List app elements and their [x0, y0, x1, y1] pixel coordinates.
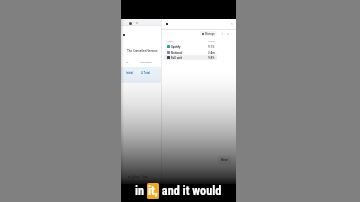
- staticText: Next: [221, 158, 228, 162]
- button[interactable]: Full unit: [167, 55, 215, 60]
- staticText: Usage: [208, 40, 215, 43]
- staticText: Manage: [205, 32, 215, 35]
- staticText: it,: [148, 184, 158, 198]
- staticText: and it would: [159, 184, 222, 198]
- button[interactable]: Next: [221, 158, 228, 162]
- staticText: 9.8%: [208, 56, 215, 59]
- staticText: 3.4m: [208, 51, 215, 54]
- staticText: 9.1%: [208, 45, 215, 48]
- button[interactable]: Spotify: [167, 44, 215, 49]
- staticText: Notional: [171, 51, 183, 55]
- staticText: A Total: [141, 71, 151, 74]
- staticText: Full unit: [171, 56, 182, 60]
- staticText: Name: [167, 40, 174, 43]
- button[interactable]: Notional: [167, 50, 215, 55]
- staticText: @chan · Subs: [131, 175, 149, 178]
- button[interactable]: Initial: [121, 67, 161, 83]
- staticText: The Cancelled Version: [127, 49, 158, 53]
- staticText: in: [135, 184, 147, 198]
- staticText: Initial: [126, 71, 134, 74]
- staticText: Something: [140, 61, 152, 64]
- button[interactable]: △: [221, 32, 223, 35]
- staticText: Spotify: [171, 45, 181, 49]
- button[interactable]: ≡: [227, 32, 230, 35]
- button[interactable]: Manage: [202, 32, 215, 35]
- staticText: ID: [126, 61, 129, 64]
- staticText: ×: [231, 22, 233, 26]
